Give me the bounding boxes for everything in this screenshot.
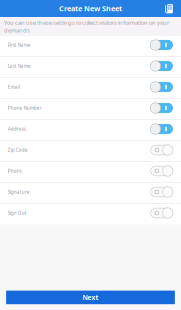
button[interactable]: Address [0, 120, 181, 140]
button[interactable]: First Name [0, 36, 181, 56]
staticText: Next [82, 293, 98, 302]
staticText: Photo [8, 168, 22, 174]
staticText: Create New Sheet [59, 3, 122, 13]
staticText: Last Name [8, 63, 31, 69]
staticText: Phone Number [8, 105, 42, 111]
button[interactable]: Last Name [0, 57, 181, 77]
button[interactable]: Phone Number [0, 99, 181, 119]
button[interactable]: Signature [0, 183, 181, 203]
staticText: You can use these settings to collect vi… [4, 18, 169, 34]
button[interactable]: Zip Code [0, 141, 181, 161]
staticText: Address [8, 126, 26, 132]
button[interactable]: Email [0, 78, 181, 98]
button[interactable]: Photo [0, 162, 181, 182]
staticText: Signature [8, 189, 30, 195]
button[interactable]: Next [6, 291, 175, 304]
staticText: Zip Code [8, 147, 28, 153]
staticText: Email [8, 84, 20, 90]
staticText: Sign Out [8, 210, 27, 216]
staticText: First Name [8, 42, 31, 48]
button[interactable]: Sheets [161, 0, 181, 17]
button[interactable]: Sign Out [0, 204, 181, 224]
